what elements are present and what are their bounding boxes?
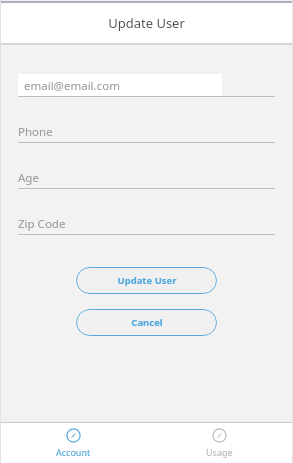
button[interactable]: Account <box>0 423 146 463</box>
staticText: Cancel <box>131 316 163 329</box>
staticText: Update User <box>108 14 185 32</box>
button[interactable]: Cancel <box>76 309 217 336</box>
button[interactable]: Update User <box>76 267 217 294</box>
staticText: Age <box>18 170 39 186</box>
staticText: Phone <box>18 124 53 140</box>
button[interactable]: Usage <box>146 423 293 463</box>
button[interactable]: Zip Code <box>0 211 293 246</box>
staticText: Zip Code <box>18 216 66 232</box>
button[interactable]: Phone <box>0 119 293 154</box>
staticText: email@email.com <box>24 78 120 94</box>
button[interactable]: Age <box>0 165 293 200</box>
button[interactable]: email@email.com <box>0 73 293 108</box>
staticText: Usage <box>206 446 233 458</box>
staticText: Update User <box>117 274 177 287</box>
staticText: Account <box>56 446 91 458</box>
